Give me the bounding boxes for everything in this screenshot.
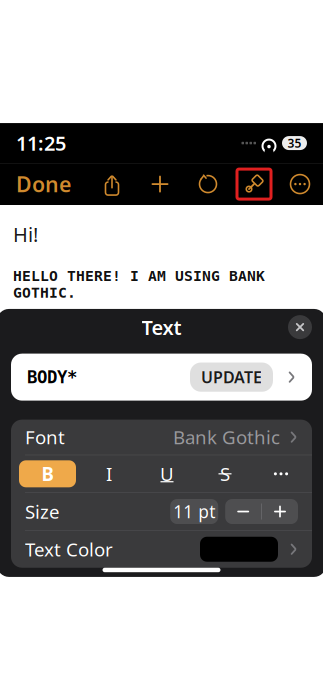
button[interactable]: More text options [258, 460, 304, 487]
button[interactable]: Close [288, 315, 312, 339]
button[interactable]: Font [11, 420, 312, 455]
staticText: Size [25, 499, 60, 524]
button[interactable]: BODY* [11, 354, 312, 401]
button[interactable]: Undo [189, 167, 227, 201]
staticText: U [160, 461, 174, 486]
button[interactable]: B [19, 460, 76, 487]
staticText: Done [16, 170, 71, 198]
button[interactable]: Format [237, 169, 271, 199]
staticText: UPDATE [201, 366, 262, 388]
staticText: BODY* [27, 367, 77, 387]
button[interactable]: S [200, 460, 250, 487]
staticText: 35 [287, 135, 301, 151]
staticText: Text [141, 314, 181, 340]
button[interactable]: Done [4, 162, 83, 206]
button[interactable]: Increase size [262, 499, 298, 524]
staticText: I [106, 461, 112, 486]
button[interactable]: Add [141, 167, 179, 201]
button[interactable]: Share [93, 167, 131, 201]
staticText: Font [25, 425, 65, 449]
button[interactable]: Text Color [11, 531, 312, 568]
staticText: Text Color [25, 537, 113, 562]
staticText: 11:25 [16, 130, 66, 156]
staticText: Bank Gothic [173, 425, 280, 449]
button[interactable]: U [142, 460, 192, 487]
staticText: B [41, 461, 53, 486]
staticText: Hi! [13, 221, 38, 248]
button[interactable]: I [84, 460, 134, 487]
button[interactable]: Decrease size [225, 499, 261, 524]
button[interactable]: More [281, 167, 319, 201]
staticText: S [220, 461, 230, 486]
staticText: 11 pt [173, 500, 215, 523]
button[interactable]: 11 pt [170, 499, 218, 524]
staticText: HELLO THERE! I AM USING BANK GOTHIC. [13, 268, 265, 301]
